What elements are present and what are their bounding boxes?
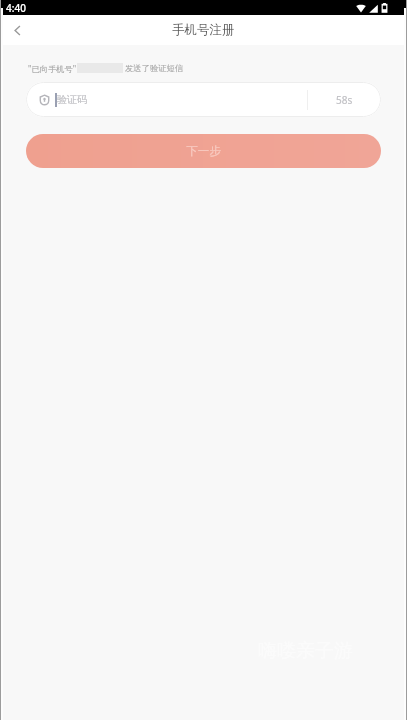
staticText: 手机号注册	[172, 22, 235, 38]
button[interactable]: 验证码	[26, 82, 381, 117]
staticText: 下一步	[186, 144, 221, 158]
button[interactable]: Back	[0, 15, 34, 45]
staticText: "已向手机号"	[28, 63, 77, 73]
staticText: 验证码	[57, 93, 87, 106]
staticText: 4:40	[6, 1, 26, 15]
button[interactable]: 58s	[308, 82, 381, 117]
staticText: 58s	[336, 93, 353, 107]
staticText: 发送了验证短信	[125, 63, 184, 73]
button[interactable]: 下一步	[26, 134, 381, 168]
